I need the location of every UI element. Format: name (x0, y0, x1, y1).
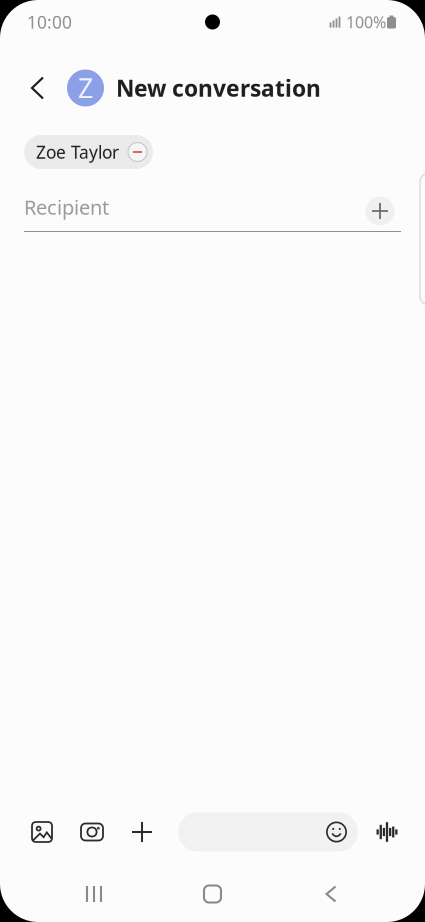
button[interactable]: Camera (67, 808, 117, 856)
button[interactable]: Back (301, 874, 361, 914)
staticText: Z (78, 70, 93, 106)
staticText: Recipient (24, 194, 109, 220)
button[interactable]: Zoe Taylor (24, 135, 153, 169)
staticText: 100% (346, 11, 386, 33)
button[interactable]: Back (16, 64, 57, 112)
staticText: New conversation (116, 73, 321, 103)
button[interactable]: Home (182, 874, 242, 914)
button[interactable]: Recents (64, 874, 124, 914)
button[interactable]: Voice message (367, 808, 407, 856)
button[interactable]: More options (117, 808, 167, 856)
button[interactable]: Add recipient (359, 185, 401, 229)
button[interactable] (178, 812, 358, 851)
staticText: Zoe Taylor (36, 140, 119, 163)
staticText: 10:00 (27, 10, 72, 33)
button[interactable]: Gallery (17, 808, 67, 856)
